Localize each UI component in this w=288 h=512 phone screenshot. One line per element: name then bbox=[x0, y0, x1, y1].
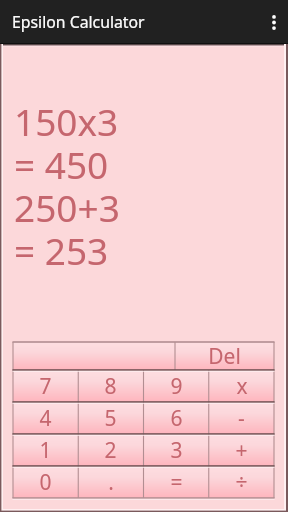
staticText: 1 bbox=[39, 436, 52, 465]
button[interactable]: x bbox=[209, 370, 274, 402]
button[interactable]: . bbox=[78, 466, 143, 498]
button[interactable]: 5 bbox=[78, 402, 143, 434]
staticText: 5 bbox=[104, 404, 117, 433]
staticText: . bbox=[108, 468, 114, 497]
staticText: 3 bbox=[170, 436, 183, 465]
button[interactable]: 8 bbox=[78, 370, 143, 402]
staticText: 7 bbox=[39, 372, 52, 401]
button[interactable]: 9 bbox=[144, 370, 209, 402]
staticText: Del bbox=[208, 342, 241, 370]
button[interactable]: + bbox=[209, 434, 274, 466]
staticText: 9 bbox=[170, 372, 183, 401]
staticText: 8 bbox=[104, 372, 117, 401]
staticText: x bbox=[236, 372, 248, 401]
staticText: + bbox=[235, 436, 248, 465]
button[interactable]: 7 bbox=[13, 370, 78, 402]
staticText: = bbox=[170, 468, 183, 497]
button[interactable]: 1 bbox=[13, 434, 78, 466]
button[interactable]: More options bbox=[260, 0, 288, 44]
button[interactable]: Del bbox=[175, 342, 274, 370]
staticText: 4 bbox=[39, 404, 52, 433]
staticText: 6 bbox=[170, 404, 183, 433]
staticText: 0 bbox=[39, 468, 52, 497]
button[interactable]: 4 bbox=[13, 402, 78, 434]
button[interactable]: - bbox=[209, 402, 274, 434]
button[interactable]: 2 bbox=[78, 434, 143, 466]
button[interactable]: ÷ bbox=[209, 466, 274, 498]
button[interactable]: 6 bbox=[144, 402, 209, 434]
button[interactable]: 0 bbox=[13, 466, 78, 498]
staticText: 2 bbox=[104, 436, 117, 465]
button[interactable]: 3 bbox=[144, 434, 209, 466]
staticText: - bbox=[238, 404, 245, 433]
button[interactable]: = bbox=[144, 466, 209, 498]
staticText: Epsilon Calculator bbox=[12, 11, 145, 33]
staticText: ÷ bbox=[235, 468, 248, 497]
staticText: 150x3 = 450 250+3 = 253 bbox=[14, 102, 120, 274]
